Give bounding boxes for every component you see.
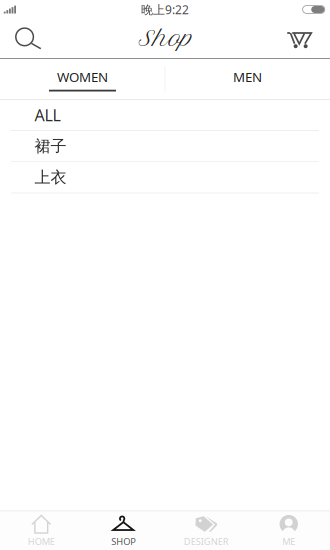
staticText: WOMEN: [57, 68, 108, 86]
staticText: ALL: [34, 104, 60, 126]
button[interactable]: MEN: [165, 59, 330, 99]
button[interactable]: Search: [0, 19, 57, 58]
button[interactable]: WOMEN: [0, 59, 165, 99]
button[interactable]: DESIGNER: [165, 511, 247, 550]
staticText: 裙子: [34, 136, 66, 156]
button[interactable]: ME: [247, 511, 330, 550]
button[interactable]: Shopping cart: [277, 21, 330, 56]
staticText: 上衣: [34, 168, 66, 187]
button[interactable]: 裙子: [0, 131, 330, 162]
staticText: 晚上9:22: [141, 1, 189, 17]
staticText: HOME: [28, 535, 55, 548]
button[interactable]: 上衣: [0, 162, 330, 193]
button[interactable]: ALL: [0, 100, 330, 131]
button[interactable]: SHOP: [82, 511, 165, 550]
staticText: MEN: [233, 68, 262, 86]
staticText: SHOP: [111, 535, 136, 548]
button[interactable]: HOME: [0, 511, 82, 550]
staticText: Shop: [138, 26, 192, 51]
staticText: ME: [282, 535, 295, 548]
staticText: DESIGNER: [184, 535, 229, 548]
